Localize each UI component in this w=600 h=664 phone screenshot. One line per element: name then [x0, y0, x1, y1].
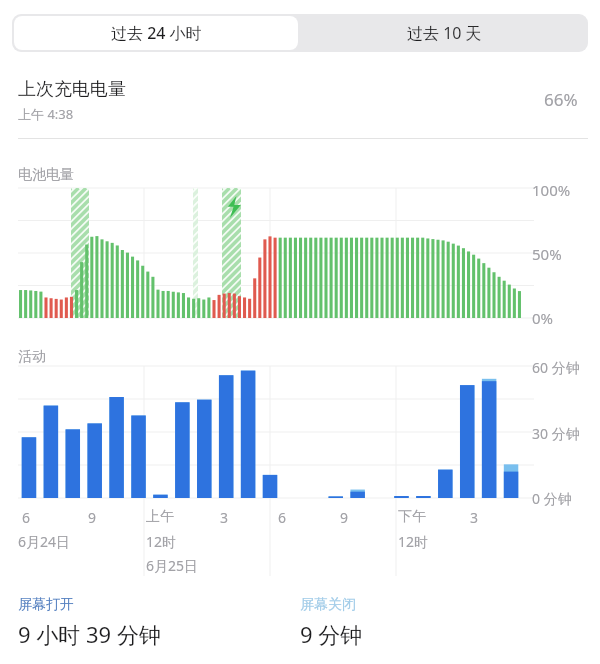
- button[interactable]: 屏幕打开: [18, 596, 288, 649]
- button[interactable]: 过去 24 小时: [14, 16, 298, 50]
- staticText: 9: [340, 508, 349, 527]
- staticText: 下午: [398, 508, 426, 526]
- staticText: 3: [470, 508, 479, 527]
- staticText: 66%: [544, 88, 578, 111]
- staticText: 12时: [146, 532, 177, 551]
- staticText: 60 分钟: [532, 358, 580, 377]
- staticText: 6: [22, 508, 31, 527]
- staticText: 活动: [18, 348, 46, 366]
- staticText: 9 分钟: [300, 619, 363, 649]
- staticText: 上午 4:38: [18, 105, 74, 123]
- staticText: 9 小时 39 分钟: [18, 619, 161, 649]
- staticText: 6月24日: [18, 532, 71, 551]
- staticText: 100%: [532, 180, 571, 200]
- staticText: 50%: [532, 244, 562, 264]
- staticText: 过去 10 天: [407, 22, 482, 44]
- staticText: 0 分钟: [532, 489, 572, 508]
- staticText: 0%: [532, 308, 554, 328]
- button[interactable]: 屏幕关闭: [300, 596, 470, 649]
- staticText: 6: [278, 508, 287, 527]
- staticText: 6月25日: [146, 556, 199, 575]
- staticText: 9: [88, 508, 97, 527]
- button[interactable]: 上次充电电量: [0, 74, 600, 134]
- staticText: 屏幕关闭: [300, 596, 356, 614]
- staticText: 屏幕打开: [18, 596, 74, 614]
- staticText: 12时: [398, 532, 429, 551]
- staticText: 上午: [146, 508, 174, 526]
- staticText: 3: [220, 508, 229, 527]
- staticText: 30 分钟: [532, 424, 580, 443]
- staticText: 上次充电电量: [18, 78, 126, 101]
- button[interactable]: 过去 10 天: [300, 14, 588, 52]
- staticText: 过去 24 小时: [111, 22, 202, 44]
- staticText: 电池电量: [18, 166, 74, 184]
